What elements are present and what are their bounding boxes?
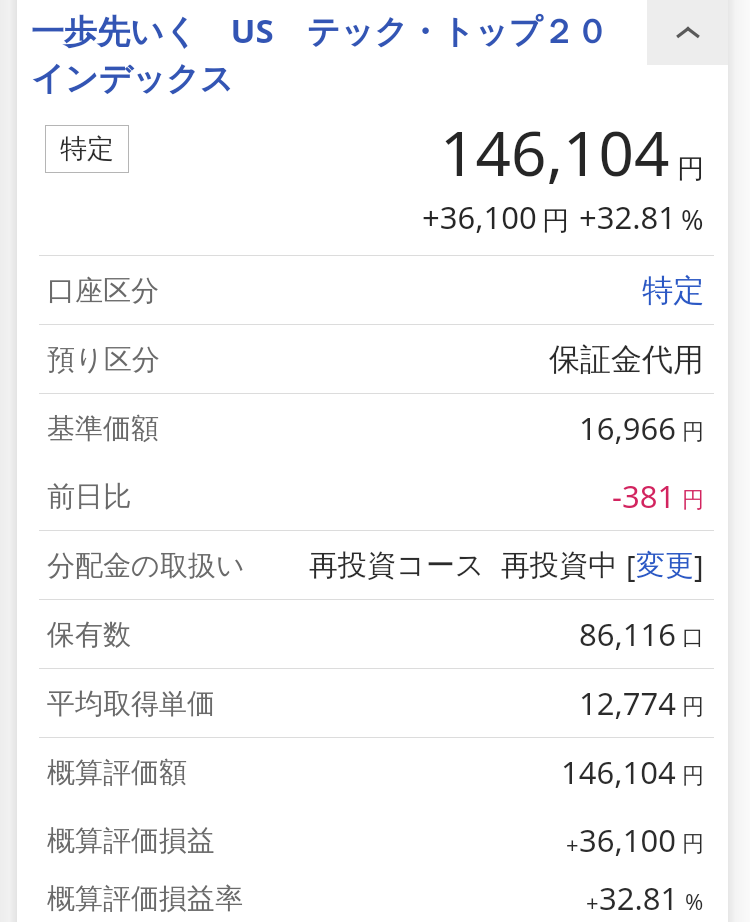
staticText: % — [685, 886, 704, 916]
staticText: 口座区分 — [47, 273, 159, 308]
staticText: 平均取得単価 — [47, 686, 215, 721]
button[interactable]: 概算評価損益 — [17, 806, 728, 874]
staticText: 円 — [682, 830, 704, 858]
staticText: 変更 — [636, 547, 694, 584]
staticText: 円 — [682, 418, 704, 446]
staticText: 146,104 — [440, 110, 670, 194]
staticText: 保証金代用 — [549, 340, 704, 379]
staticText: 再投資コース — [309, 547, 485, 584]
staticText: 一歩先いく US テック・トップ２０ インデックス — [31, 8, 647, 100]
staticText: 概算評価額 — [47, 755, 187, 790]
staticText: 基準価額 — [47, 411, 159, 446]
button[interactable]: 基準価額 — [17, 394, 728, 462]
staticText: 概算評価損益 — [47, 823, 215, 858]
staticText: 円 — [682, 693, 704, 721]
staticText: + — [566, 829, 579, 859]
staticText: 146,104 — [561, 751, 676, 793]
button[interactable]: 分配金の取扱い — [17, 531, 728, 599]
button[interactable]: 概算評価損益率 — [17, 874, 728, 922]
staticText: 円 — [677, 152, 704, 186]
button[interactable]: 口座区分 — [17, 256, 728, 324]
button[interactable]: 平均取得単価 — [17, 669, 728, 737]
staticText: 再投資中 — [501, 547, 617, 584]
staticText: 概算評価損益率 — [47, 881, 243, 916]
button[interactable]: 特定 — [45, 125, 129, 173]
staticText: 12,774 — [579, 682, 676, 724]
staticText: 口 — [682, 624, 704, 652]
staticText: -381 — [612, 475, 676, 517]
staticText: 前日比 — [47, 479, 131, 514]
staticText: +32.81 — [579, 196, 676, 238]
button[interactable]: 前日比 — [17, 462, 728, 530]
staticText: 16,966 — [579, 407, 676, 449]
button[interactable]: 概算評価額 — [17, 738, 728, 806]
staticText: 預り区分 — [47, 342, 160, 377]
staticText: ] — [694, 546, 704, 585]
staticText: [ — [626, 546, 636, 585]
staticText: 円 — [682, 486, 704, 514]
staticText: 保有数 — [47, 617, 131, 652]
staticText: 特定 — [60, 132, 114, 166]
staticText: 86,116 — [579, 613, 676, 655]
staticText: + — [586, 887, 599, 917]
button[interactable]: 預り区分 — [17, 325, 728, 393]
staticText: 特定 — [642, 271, 704, 310]
staticText: 円 — [682, 762, 704, 790]
staticText: % — [681, 201, 704, 238]
button[interactable]: 折りたたむ — [647, 0, 728, 65]
staticText: 分配金の取扱い — [47, 548, 245, 583]
staticText: 32.81 — [599, 877, 679, 919]
button[interactable]: [ — [626, 546, 704, 585]
button[interactable]: 保有数 — [17, 600, 728, 668]
staticText: 円 — [542, 204, 569, 238]
staticText: +36,100 — [422, 196, 537, 238]
staticText: 36,100 — [579, 819, 676, 861]
